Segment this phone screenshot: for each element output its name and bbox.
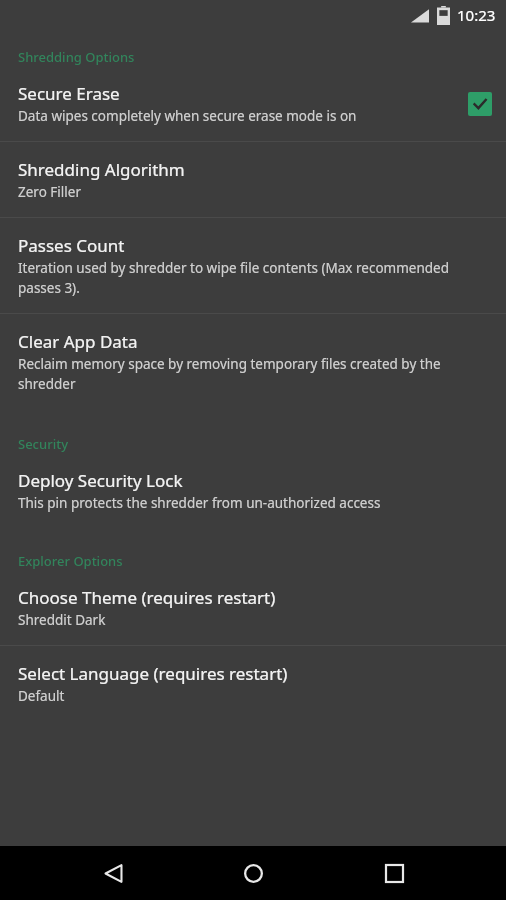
staticText: Iteration used by shredder to wipe file … — [18, 259, 492, 297]
staticText: Choose Theme (requires restart) — [18, 586, 276, 609]
staticText: Clear App Data — [18, 330, 138, 353]
staticText: Zero Filler — [18, 183, 81, 201]
staticText: Select Language (requires restart) — [18, 662, 288, 685]
button[interactable]: Select Language (requires restart) — [0, 646, 506, 721]
button[interactable]: Shredding Algorithm — [0, 142, 506, 217]
button[interactable]: Home — [225, 846, 281, 900]
button[interactable]: Deploy Security Lock — [0, 467, 506, 528]
button[interactable]: Secure Erase toggle — [468, 92, 492, 116]
button[interactable]: Choose Theme (requires restart) — [0, 584, 506, 645]
staticText: Deploy Security Lock — [18, 469, 183, 492]
staticText: This pin protects the shredder from un-a… — [18, 494, 381, 512]
staticText: Data wipes completely when secure erase … — [18, 107, 357, 125]
button[interactable]: Clear App Data — [0, 314, 506, 409]
button[interactable]: Recent apps — [366, 846, 422, 900]
staticText: Passes Count — [18, 234, 125, 257]
staticText: Default — [18, 687, 65, 705]
staticText: 10:23 — [457, 5, 496, 25]
button[interactable]: Passes Count — [0, 218, 506, 313]
staticText: Secure Erase — [18, 82, 120, 105]
staticText: Shredding Options — [18, 48, 135, 66]
staticText: Shredding Algorithm — [18, 158, 185, 181]
staticText: Explorer Options — [18, 552, 123, 570]
button[interactable]: Back — [85, 846, 141, 900]
staticText: Security — [18, 435, 68, 453]
staticText: Reclaim memory space by removing tempora… — [18, 355, 492, 393]
button[interactable]: Secure Erase — [0, 80, 506, 141]
staticText: Shreddit Dark — [18, 611, 106, 629]
